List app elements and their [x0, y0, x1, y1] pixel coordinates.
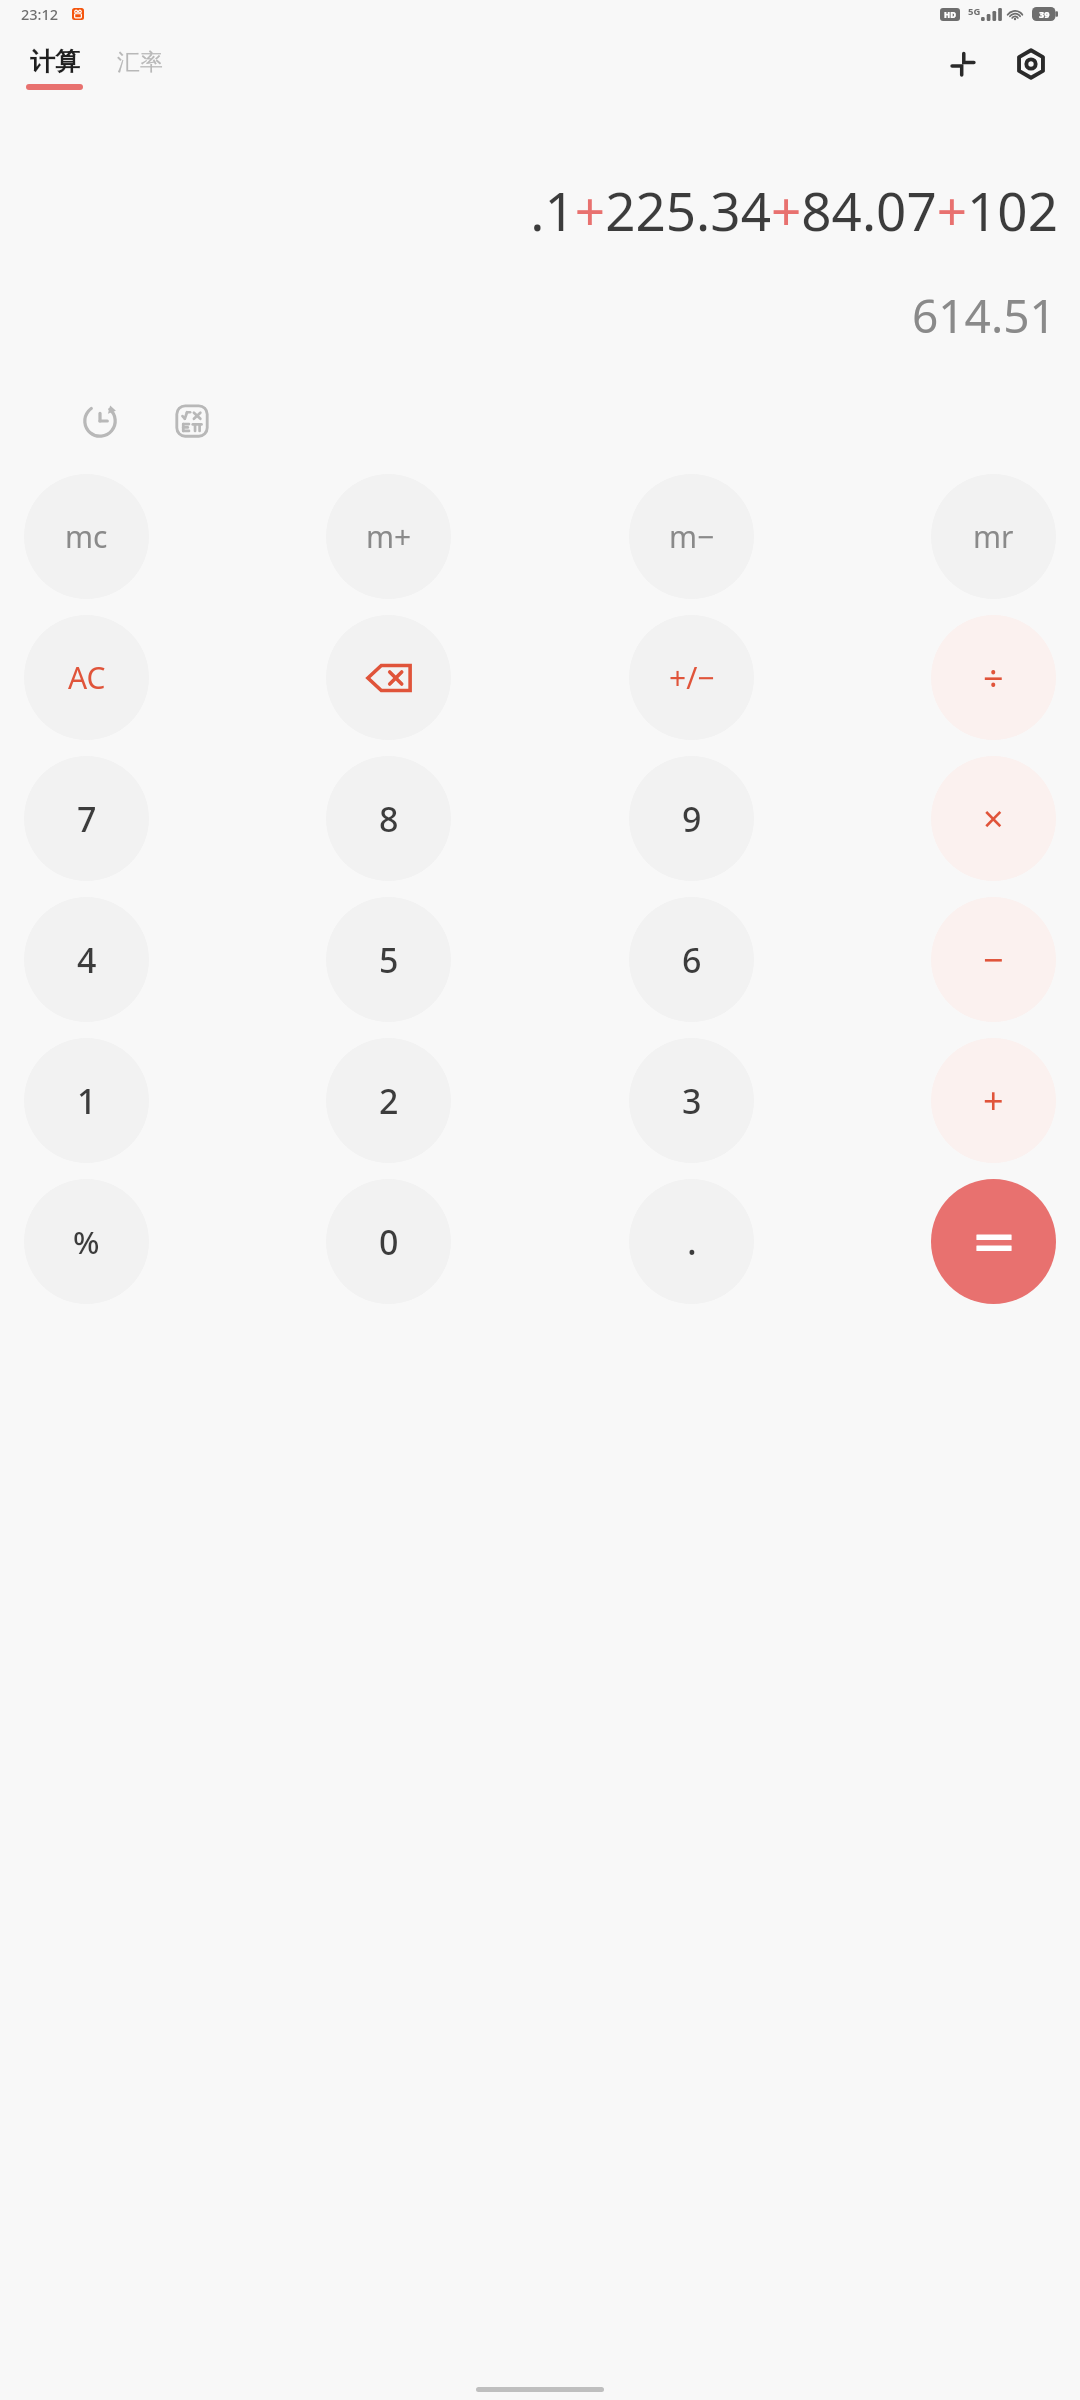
- button[interactable]: [931, 1179, 1056, 1304]
- button[interactable]: −: [931, 897, 1056, 1022]
- button[interactable]: %: [24, 1179, 149, 1304]
- button[interactable]: 7: [24, 756, 149, 881]
- button[interactable]: Scientific mode: [164, 393, 220, 449]
- staticText: mr: [973, 516, 1014, 557]
- button[interactable]: mr: [931, 474, 1056, 599]
- button[interactable]: 1: [24, 1038, 149, 1163]
- staticText: −: [983, 935, 1004, 984]
- staticText: 3: [682, 1078, 702, 1124]
- staticText: 9: [682, 796, 702, 842]
- staticText: m+: [366, 516, 412, 557]
- button[interactable]: 8: [326, 756, 451, 881]
- staticText: 8: [379, 796, 399, 842]
- staticText: 614.51: [912, 284, 1056, 347]
- button[interactable]: 计算: [24, 46, 85, 90]
- staticText: +: [983, 1076, 1004, 1125]
- staticText: 1: [77, 1078, 97, 1124]
- staticText: +/−: [669, 657, 715, 698]
- staticText: ÷: [983, 653, 1004, 702]
- staticText: ×: [983, 794, 1004, 843]
- staticText: m−: [669, 516, 715, 557]
- staticText: AC: [68, 657, 106, 698]
- staticText: 2: [379, 1078, 399, 1124]
- staticText: HD: [944, 9, 956, 20]
- button[interactable]: 9: [629, 756, 754, 881]
- button[interactable]: Backspace: [326, 615, 451, 740]
- staticText: 4: [77, 937, 97, 983]
- button[interactable]: mc: [24, 474, 149, 599]
- staticText: 计算: [30, 46, 80, 77]
- button[interactable]: .: [629, 1179, 754, 1304]
- button[interactable]: m−: [629, 474, 754, 599]
- button[interactable]: +/−: [629, 615, 754, 740]
- staticText: 7: [77, 796, 97, 842]
- button[interactable]: History: [72, 393, 128, 449]
- staticText: .1+225.34+84.07+102: [530, 174, 1058, 246]
- button[interactable]: 0: [326, 1179, 451, 1304]
- button[interactable]: +: [931, 1038, 1056, 1163]
- button[interactable]: Expand: [940, 41, 986, 87]
- button[interactable]: 2: [326, 1038, 451, 1163]
- staticText: 5: [379, 937, 399, 983]
- button[interactable]: 6: [629, 897, 754, 1022]
- button[interactable]: m+: [326, 474, 451, 599]
- staticText: 23:12: [21, 4, 59, 24]
- button[interactable]: 4: [24, 897, 149, 1022]
- staticText: 汇率: [117, 48, 163, 77]
- staticText: .: [687, 1217, 697, 1266]
- staticText: mc: [65, 516, 108, 557]
- button[interactable]: AC: [24, 615, 149, 740]
- staticText: %: [73, 1221, 100, 1263]
- staticText: 6: [682, 937, 702, 983]
- staticText: 39: [1039, 8, 1050, 20]
- staticText: 0: [379, 1219, 399, 1265]
- button[interactable]: 汇率: [113, 54, 167, 83]
- button[interactable]: ×: [931, 756, 1056, 881]
- button[interactable]: ÷: [931, 615, 1056, 740]
- button[interactable]: 3: [629, 1038, 754, 1163]
- button[interactable]: Settings: [1008, 41, 1054, 87]
- button[interactable]: 5: [326, 897, 451, 1022]
- staticText: 5G: [968, 5, 981, 18]
